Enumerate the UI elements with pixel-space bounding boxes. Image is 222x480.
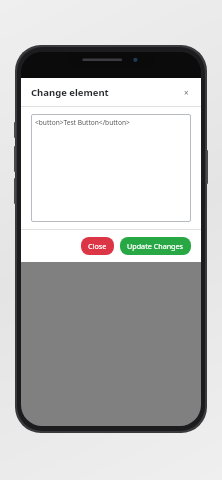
staticText: <button>Test Button</button> <box>35 118 130 127</box>
button[interactable]: Close <box>81 237 114 255</box>
button[interactable]: <button>Test Button</button> <box>31 114 191 222</box>
button[interactable]: Update Changes <box>120 237 191 255</box>
staticText: Update Changes <box>127 241 184 251</box>
staticText: Close <box>88 241 107 251</box>
button[interactable]: Close dialog <box>179 85 193 99</box>
staticText: Change element <box>31 86 109 99</box>
staticText: × <box>184 87 189 98</box>
